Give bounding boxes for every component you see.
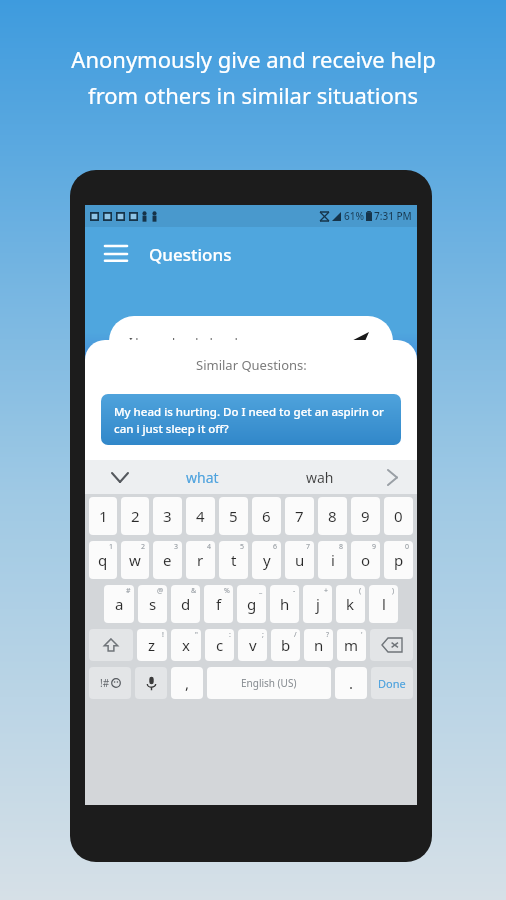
button[interactable]: Expand suggestions [97, 460, 143, 494]
button[interactable]: 3 [153, 497, 182, 535]
button[interactable]: h [270, 585, 299, 623]
staticText: : [229, 630, 231, 640]
staticText: 9 [372, 542, 377, 552]
button[interactable]: More suggestions [379, 460, 405, 494]
button[interactable]: wah [261, 460, 379, 494]
button[interactable]: w [121, 541, 149, 579]
staticText: I have a headache [129, 334, 226, 349]
button[interactable]: I have a headache [109, 316, 393, 366]
button[interactable]: k [336, 585, 365, 623]
button[interactable]: n [304, 629, 333, 661]
staticText: n [314, 635, 324, 655]
button[interactable]: c [205, 629, 234, 661]
staticText: 4 [196, 506, 205, 526]
staticText: l [382, 594, 386, 614]
button[interactable]: 0 [384, 497, 413, 535]
button[interactable]: , [171, 667, 203, 699]
button[interactable]: i [318, 541, 347, 579]
staticText: @ [157, 586, 164, 596]
staticText: 0 [405, 542, 410, 552]
staticText: t [231, 550, 237, 570]
button[interactable]: Symbols and emoji [89, 667, 131, 699]
staticText: ! [162, 630, 164, 640]
button[interactable]: 6 [252, 497, 281, 535]
staticText: 6 [273, 542, 278, 552]
staticText: x [182, 635, 190, 655]
button[interactable]: p [384, 541, 413, 579]
staticText: % [224, 586, 230, 596]
button[interactable]: e [153, 541, 182, 579]
staticText: # [126, 586, 131, 596]
staticText: v [249, 635, 257, 655]
staticText: wah [306, 468, 334, 487]
button[interactable]: 4 [186, 497, 215, 535]
button[interactable]: q [89, 541, 117, 579]
button[interactable]: 1 [89, 497, 117, 535]
button[interactable]: m [337, 629, 366, 661]
button[interactable]: 9 [351, 497, 380, 535]
button[interactable]: d [171, 585, 200, 623]
staticText: 5 [229, 506, 238, 526]
staticText: My head is hurting. Do I need to get an … [114, 404, 388, 436]
staticText: 1 [109, 542, 114, 552]
button[interactable]: . [335, 667, 367, 699]
button[interactable]: s [138, 585, 167, 623]
button[interactable]: t [219, 541, 248, 579]
staticText: b [281, 635, 291, 655]
staticText: " [195, 630, 198, 640]
button[interactable]: o [351, 541, 380, 579]
staticText: m [344, 635, 359, 655]
staticText: a [115, 594, 124, 614]
button[interactable]: 5 [219, 497, 248, 535]
button[interactable]: My head is hurting. Do I need to get an … [101, 394, 401, 445]
staticText: 8 [328, 506, 337, 526]
button[interactable]: 8 [318, 497, 347, 535]
staticText: Done [378, 676, 406, 691]
button[interactable]: b [271, 629, 300, 661]
button[interactable]: Shift [89, 629, 133, 661]
staticText: o [361, 550, 371, 570]
staticText: !# [100, 676, 110, 690]
staticText: r [197, 550, 204, 570]
button[interactable]: Send [347, 328, 373, 354]
staticText: ? [326, 630, 330, 640]
button[interactable]: y [252, 541, 281, 579]
staticText: d [181, 594, 191, 614]
staticText: _ [259, 586, 263, 596]
button[interactable]: Backspace [370, 629, 413, 661]
button[interactable]: l [369, 585, 398, 623]
staticText: 1 [99, 506, 108, 526]
button[interactable]: English (US) [207, 667, 331, 699]
staticText: g [247, 594, 257, 614]
staticText: s [149, 594, 157, 614]
staticText: 6 [262, 506, 271, 526]
staticText: what [186, 468, 219, 487]
button[interactable]: u [285, 541, 314, 579]
button[interactable]: v [238, 629, 267, 661]
button[interactable]: Voice input [135, 667, 167, 699]
staticText: . [349, 673, 354, 693]
button[interactable]: r [186, 541, 215, 579]
button[interactable]: f [204, 585, 233, 623]
button[interactable]: Open navigation menu [99, 237, 133, 271]
button[interactable]: Done [371, 667, 413, 699]
button[interactable]: g [237, 585, 266, 623]
button[interactable]: 2 [121, 497, 149, 535]
staticText: ' [361, 630, 363, 640]
staticText: English (US) [241, 676, 297, 690]
staticText: 3 [163, 506, 172, 526]
staticText: 7 [295, 506, 304, 526]
staticText: 3 [174, 542, 179, 552]
button[interactable]: 7 [285, 497, 314, 535]
staticText: y [263, 550, 271, 570]
button[interactable]: what [143, 460, 261, 494]
staticText: - [293, 586, 296, 596]
button[interactable]: z [137, 629, 167, 661]
staticText: Questions [149, 243, 232, 266]
button[interactable]: j [303, 585, 332, 623]
staticText: p [394, 550, 404, 570]
staticText: ; [262, 630, 264, 640]
button[interactable]: a [104, 585, 134, 623]
button[interactable]: x [171, 629, 201, 661]
staticText: Similar Questions: [196, 356, 307, 374]
